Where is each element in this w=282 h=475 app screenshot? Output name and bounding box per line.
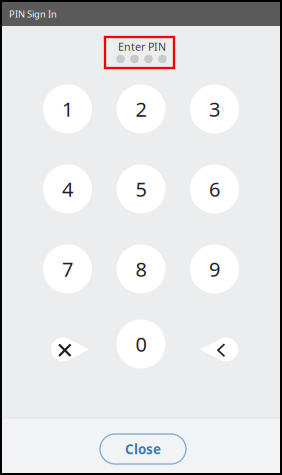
button[interactable]: 3 <box>190 84 239 133</box>
button[interactable]: 0 <box>116 319 165 368</box>
button[interactable]: Close <box>100 434 186 464</box>
button[interactable]: 5 <box>116 164 165 213</box>
staticText: 3 <box>209 96 220 122</box>
button[interactable]: 8 <box>116 244 165 293</box>
button[interactable]: Clear <box>45 325 94 374</box>
staticText: PIN Sign In <box>9 8 57 20</box>
staticText: 7 <box>62 256 73 282</box>
staticText: 1 <box>62 96 73 122</box>
staticText: 2 <box>135 96 146 122</box>
button[interactable]: 9 <box>190 244 239 293</box>
button[interactable]: 1 <box>43 84 92 133</box>
staticText: 0 <box>135 331 146 357</box>
button[interactable]: 4 <box>43 164 92 213</box>
button[interactable]: 2 <box>116 84 165 133</box>
staticText: Enter PIN <box>118 39 166 54</box>
staticText: 9 <box>209 256 220 282</box>
staticText: 4 <box>62 176 73 202</box>
staticText: 6 <box>209 176 220 202</box>
button[interactable]: 7 <box>43 244 92 293</box>
staticText: Close <box>125 440 161 458</box>
staticText: 5 <box>135 176 146 202</box>
staticText: 8 <box>135 256 146 282</box>
button[interactable]: Backspace <box>194 325 243 374</box>
button[interactable]: 6 <box>190 164 239 213</box>
